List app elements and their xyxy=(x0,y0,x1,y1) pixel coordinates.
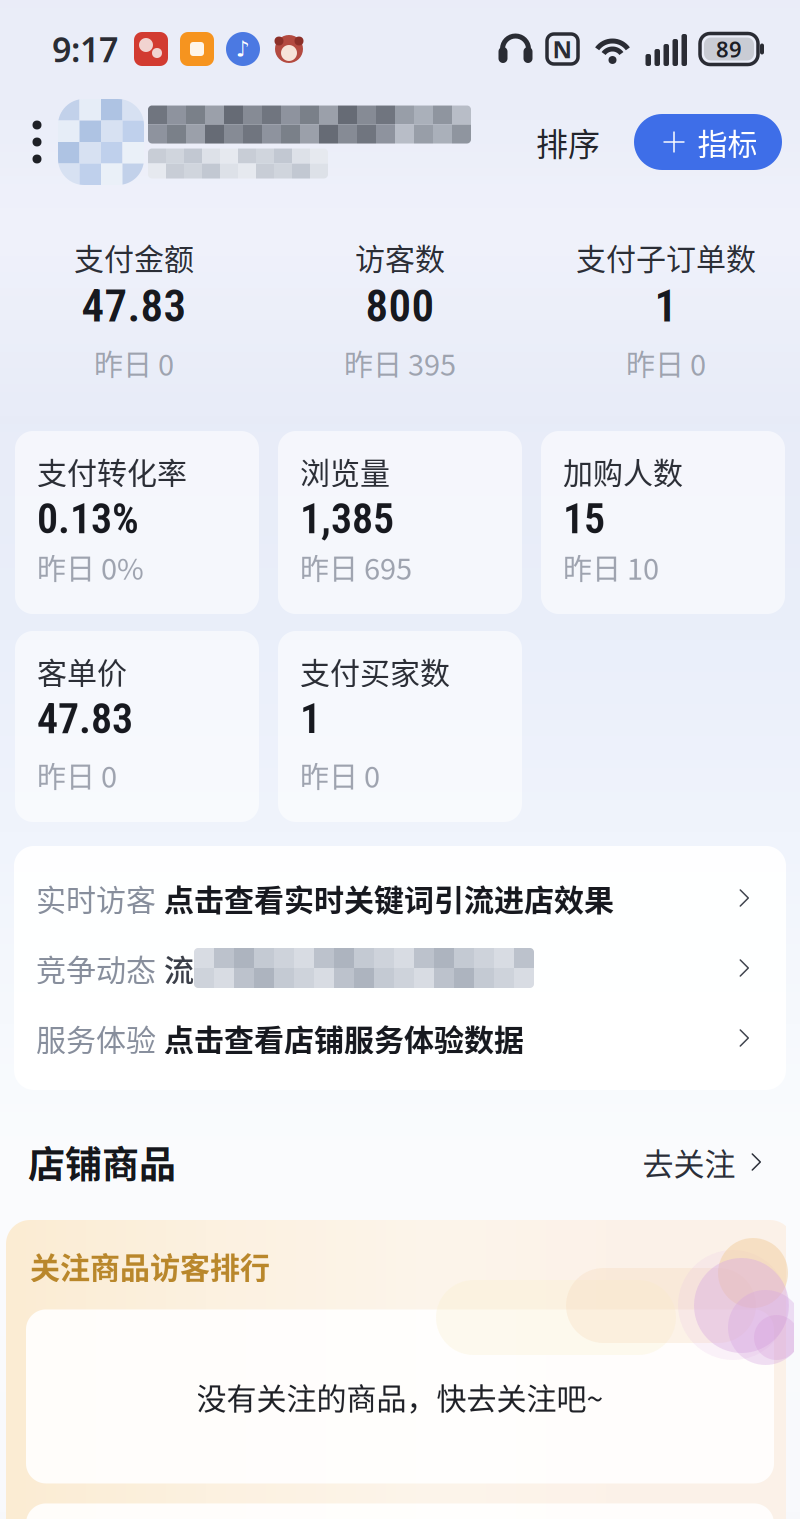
staticText: 访客数 xyxy=(355,235,445,279)
staticText: 800 xyxy=(365,280,434,332)
staticText: 1 xyxy=(300,694,321,744)
staticText: 支付子订单数 xyxy=(576,235,756,279)
staticText: 客单价 xyxy=(37,649,127,693)
staticText: 关注商品访客排行 xyxy=(30,1244,270,1287)
staticText: 流 xyxy=(164,946,194,990)
staticText: 支付转化率 xyxy=(37,449,187,493)
staticText: 指标 xyxy=(697,120,757,164)
staticText: N xyxy=(552,33,572,65)
staticText: 15 xyxy=(563,494,605,544)
staticText: 去关注 xyxy=(642,1140,735,1184)
staticText: 昨日 0 xyxy=(94,342,174,384)
button[interactable]: 支付买家数 xyxy=(278,631,522,822)
staticText: 加购人数 xyxy=(563,449,683,493)
staticText: 1 xyxy=(654,280,677,332)
staticText: 支付金额 xyxy=(74,235,194,279)
staticText: 排序 xyxy=(536,119,600,165)
staticText: 0.13% xyxy=(37,494,139,544)
staticText: 支付买家数 xyxy=(300,649,450,693)
button[interactable]: 服务体验 xyxy=(14,1003,786,1073)
staticText: 昨日 695 xyxy=(300,546,412,588)
staticText: 89 xyxy=(716,34,742,64)
button[interactable]: 实时访客 xyxy=(14,863,786,933)
staticText: 服务体验 xyxy=(36,1016,156,1060)
button[interactable]: 客单价 xyxy=(15,631,259,822)
staticText: 点击查看店铺服务体验数据 xyxy=(164,1016,524,1060)
staticText: 9:17 xyxy=(52,26,118,72)
staticText: 实时访客 xyxy=(36,876,156,920)
staticText: 竞争动态 xyxy=(36,946,156,990)
button[interactable]: 去关注 xyxy=(642,1140,770,1184)
staticText: 浏览量 xyxy=(300,449,390,493)
staticText: 没有关注的商品，快去关注吧~ xyxy=(196,1375,603,1418)
staticText: 昨日 0 xyxy=(300,754,380,796)
staticText: 昨日 395 xyxy=(344,342,456,384)
button[interactable]: 支付转化率 xyxy=(15,431,259,614)
staticText: 昨日 0% xyxy=(37,546,144,588)
staticText: 店铺商品 xyxy=(28,1135,176,1189)
button[interactable]: 竞争动态 xyxy=(14,933,786,1003)
button[interactable]: 浏览量 xyxy=(278,431,522,614)
staticText: ♪ xyxy=(236,36,250,62)
staticText: 47.83 xyxy=(37,694,133,744)
staticText: 昨日 0 xyxy=(37,754,117,796)
staticText: 昨日 0 xyxy=(626,342,706,384)
button[interactable]: 指标 xyxy=(634,114,782,170)
staticText: 点击查看实时关键词引流进店效果 xyxy=(164,876,614,920)
button[interactable]: 排序 xyxy=(536,119,600,165)
button[interactable]: 加购人数 xyxy=(541,431,785,614)
button[interactable]: Menu xyxy=(22,110,52,174)
staticText: 1,385 xyxy=(300,494,394,544)
staticText: 昨日 10 xyxy=(563,546,659,588)
staticText: 47.83 xyxy=(81,280,186,332)
